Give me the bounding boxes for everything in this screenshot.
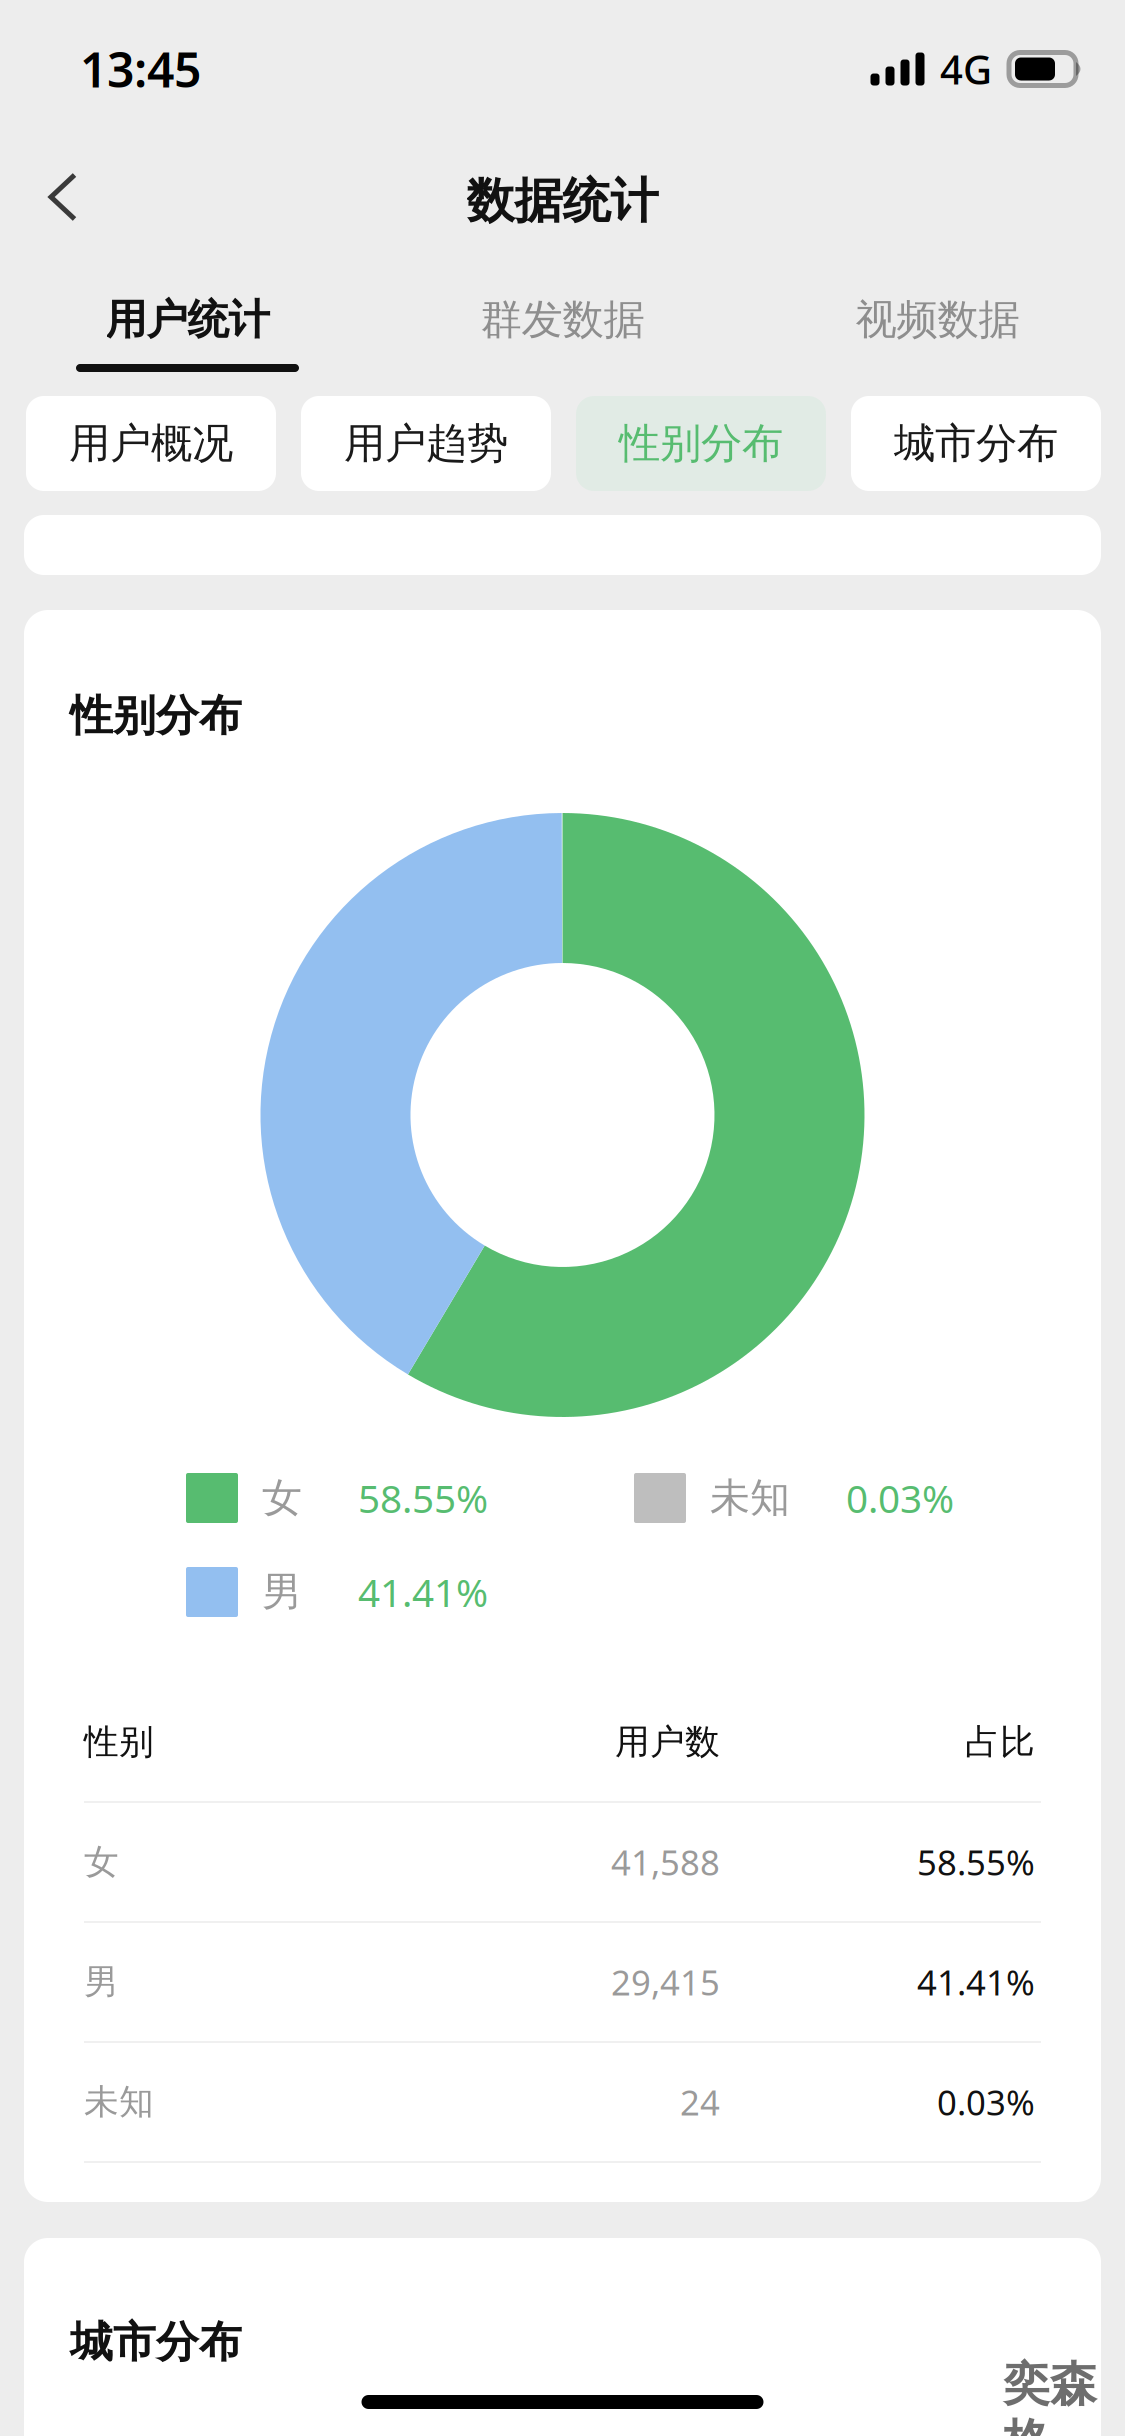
staticText: 29,415 (611, 1959, 720, 2005)
staticText: 占比 (965, 1721, 1035, 1763)
staticText: 奕森格 (1003, 2356, 1097, 2436)
button[interactable]: 群发数据 (375, 264, 750, 372)
staticText: 用户趋势 (344, 418, 508, 469)
button[interactable]: 用户统计 (0, 264, 375, 372)
staticText: 41.41% (917, 1959, 1035, 2005)
staticText: 41.41% (358, 1566, 488, 1618)
staticText: 数据统计 (466, 171, 658, 230)
button[interactable]: Back (8, 145, 118, 249)
staticText: 0.03% (846, 1472, 954, 1524)
staticText: 58.55% (917, 1839, 1035, 1885)
staticText: 性别分布 (619, 418, 783, 469)
staticText: 性别分布 (70, 690, 242, 742)
staticText: 0.03% (937, 2079, 1035, 2125)
staticText: 男 (84, 1961, 119, 2003)
staticText: 58.55% (358, 1472, 488, 1524)
staticText: 未知 (84, 2081, 154, 2123)
staticText: 女 (262, 1473, 302, 1522)
button[interactable]: 用户趋势 (301, 396, 551, 491)
staticText: 城市分布 (894, 418, 1058, 469)
staticText: 群发数据 (480, 294, 644, 345)
staticText: 性别 (84, 1721, 154, 1763)
staticText: 用户数 (615, 1721, 720, 1763)
button[interactable]: 城市分布 (851, 396, 1101, 491)
staticText: 未知 (710, 1473, 790, 1522)
staticText: 视频数据 (855, 294, 1019, 345)
staticText: 男 (262, 1567, 302, 1616)
staticText: 41,588 (611, 1839, 720, 1885)
staticText: 13:45 (80, 37, 201, 101)
staticText: 城市分布 (70, 2316, 242, 2368)
staticText: 女 (84, 1841, 119, 1883)
button[interactable]: 用户概况 (26, 396, 276, 491)
button[interactable]: 性别分布 (576, 396, 826, 491)
staticText: 用户统计 (105, 294, 269, 345)
staticText: 24 (680, 2079, 720, 2125)
staticText: 4G (940, 42, 992, 95)
staticText: 用户概况 (69, 418, 233, 469)
button[interactable]: 视频数据 (750, 264, 1125, 372)
